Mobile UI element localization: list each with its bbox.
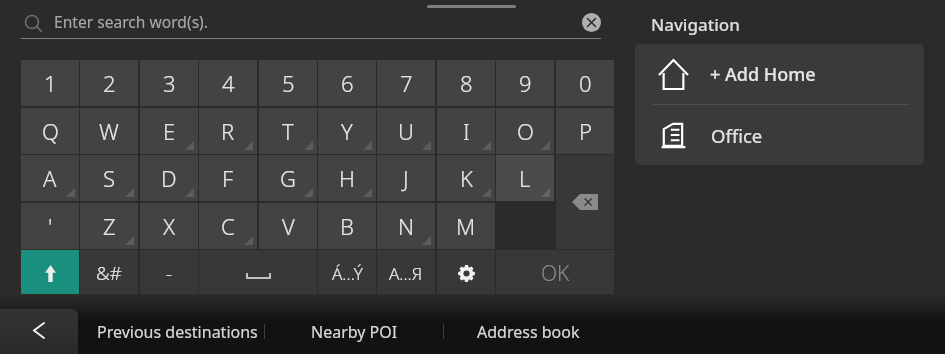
staticText: &# — [96, 260, 122, 286]
staticText: 2 — [103, 68, 116, 98]
staticText: + Add Home — [710, 62, 816, 87]
button[interactable]: Q — [21, 108, 79, 154]
staticText: Á...Ý — [332, 262, 363, 285]
staticText: Nearby POI — [311, 321, 398, 343]
staticText: Y — [341, 116, 353, 146]
staticText: R — [221, 116, 235, 146]
staticText: 4 — [222, 68, 235, 98]
staticText: Office — [711, 123, 763, 148]
button[interactable]: U — [377, 108, 435, 154]
staticText: P — [579, 116, 592, 146]
staticText: А...Я — [389, 262, 423, 285]
staticText: T — [282, 116, 294, 146]
staticText: Enter search word(s). — [54, 11, 208, 32]
button[interactable]: W — [80, 108, 138, 154]
button[interactable]: F — [199, 155, 257, 201]
button[interactable]: P — [556, 108, 614, 154]
staticText: D — [161, 163, 177, 193]
staticText: 6 — [341, 68, 354, 98]
staticText: 3 — [163, 68, 176, 98]
button[interactable]: E — [140, 108, 198, 154]
staticText: N — [398, 211, 415, 241]
button[interactable]: Backspace — [556, 155, 614, 249]
button[interactable]: Clear — [582, 13, 601, 32]
button[interactable]: Shift — [21, 250, 79, 296]
staticText: V — [282, 211, 295, 241]
button[interactable]: Address book — [473, 309, 583, 354]
staticText: 8 — [460, 68, 473, 98]
staticText: OK — [541, 259, 570, 288]
button[interactable]: Y — [318, 108, 376, 154]
staticText: H — [339, 163, 355, 193]
button[interactable]: J — [377, 155, 435, 201]
staticText: U — [398, 116, 414, 146]
button[interactable]: L — [496, 155, 554, 201]
staticText: Q — [42, 116, 59, 146]
button[interactable]: S — [80, 155, 138, 201]
button[interactable]: K — [437, 155, 495, 201]
button[interactable]: Office — [635, 105, 924, 165]
button[interactable]: ' — [21, 203, 79, 249]
button[interactable]: Back — [0, 309, 78, 354]
button[interactable]: B — [318, 203, 376, 249]
staticText: E — [163, 116, 176, 146]
staticText: J — [403, 163, 409, 193]
staticText: L — [519, 163, 531, 193]
staticText: Z — [103, 211, 116, 241]
button[interactable]: 5 — [259, 60, 317, 106]
button[interactable]: 0 — [556, 60, 614, 106]
staticText: I — [463, 116, 470, 146]
staticText: O — [517, 116, 534, 146]
staticText: 9 — [519, 68, 532, 98]
button[interactable]: I — [437, 108, 495, 154]
staticText: A — [43, 163, 57, 193]
button[interactable]: Z — [80, 203, 138, 249]
button[interactable]: 4 — [199, 60, 257, 106]
button[interactable]: R — [199, 108, 257, 154]
button[interactable]: 6 — [318, 60, 376, 106]
button[interactable]: O — [496, 108, 554, 154]
staticText: Address book — [477, 321, 580, 343]
button[interactable]: 3 — [140, 60, 198, 106]
staticText: - — [166, 260, 173, 286]
button[interactable]: Space — [199, 250, 317, 296]
button[interactable]: - — [140, 250, 198, 296]
button[interactable]: N — [377, 203, 435, 249]
button[interactable]: D — [140, 155, 198, 201]
staticText: S — [103, 163, 116, 193]
button[interactable]: A — [21, 155, 79, 201]
button[interactable]: Previous destinations — [92, 309, 262, 354]
button[interactable]: Keyboard settings — [437, 250, 495, 296]
button[interactable]: А...Я — [377, 250, 435, 296]
button[interactable]: + Add Home — [635, 44, 924, 104]
staticText: X — [163, 211, 176, 241]
staticText: 0 — [579, 68, 592, 98]
staticText: M — [456, 211, 476, 241]
button[interactable]: 8 — [437, 60, 495, 106]
staticText: F — [222, 163, 234, 193]
button[interactable]: 9 — [496, 60, 554, 106]
staticText: 1 — [44, 68, 57, 98]
button[interactable]: V — [259, 203, 317, 249]
staticText: ' — [48, 211, 53, 241]
button[interactable]: C — [199, 203, 257, 249]
staticText: K — [460, 163, 473, 193]
button[interactable]: G — [259, 155, 317, 201]
button[interactable]: &# — [80, 250, 138, 296]
staticText: W — [99, 116, 119, 146]
button[interactable]: Á...Ý — [318, 250, 376, 296]
button[interactable]: OK — [496, 250, 614, 296]
button[interactable]: 7 — [377, 60, 435, 106]
staticText: G — [280, 163, 296, 193]
staticText: Previous destinations — [97, 321, 258, 343]
button[interactable]: T — [259, 108, 317, 154]
button[interactable]: M — [437, 203, 495, 249]
button[interactable]: Nearby POI — [306, 309, 402, 354]
staticText: 7 — [400, 68, 413, 98]
staticText: B — [340, 211, 354, 241]
button[interactable]: X — [140, 203, 198, 249]
button[interactable]: H — [318, 155, 376, 201]
button[interactable]: 1 — [21, 60, 79, 106]
staticText: 5 — [282, 68, 295, 98]
button[interactable]: 2 — [80, 60, 138, 106]
